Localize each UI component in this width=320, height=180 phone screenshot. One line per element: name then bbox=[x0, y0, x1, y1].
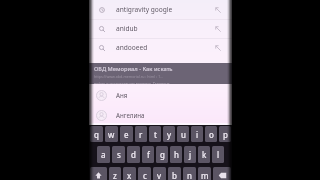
staticText: o bbox=[209, 129, 214, 140]
staticText: y bbox=[167, 129, 172, 140]
staticText: Ангелина bbox=[116, 111, 145, 119]
button[interactable]: andooeed bbox=[89, 38, 232, 57]
button[interactable]: b bbox=[168, 167, 181, 180]
button[interactable]: a bbox=[97, 146, 110, 163]
staticText: anidub bbox=[116, 24, 138, 33]
button[interactable]: k bbox=[198, 146, 210, 163]
staticText: x bbox=[127, 170, 132, 180]
staticText: войны и пострадавших военных. Странице bbox=[94, 81, 170, 84]
staticText: u bbox=[181, 129, 186, 140]
staticText: https://www.obd-memorial.ru › html › 1..… bbox=[94, 74, 164, 79]
button[interactable]: e bbox=[120, 126, 133, 142]
button[interactable]: Backspace bbox=[213, 167, 231, 180]
button[interactable]: z bbox=[109, 167, 121, 180]
staticText: n bbox=[187, 170, 192, 180]
button[interactable]: n bbox=[183, 167, 196, 180]
button[interactable]: r bbox=[135, 126, 147, 142]
button[interactable]: y bbox=[163, 126, 175, 142]
staticText: z bbox=[113, 170, 117, 180]
button[interactable]: m bbox=[198, 167, 211, 180]
other: Insert suggestion bbox=[215, 7, 221, 13]
button[interactable]: u bbox=[177, 126, 189, 142]
staticText: d bbox=[131, 149, 136, 160]
staticText: t bbox=[154, 129, 157, 140]
button[interactable]: q bbox=[90, 126, 103, 142]
button[interactable]: h bbox=[170, 146, 182, 163]
staticText: r bbox=[139, 129, 143, 140]
button[interactable]: l bbox=[212, 146, 224, 163]
button[interactable]: t bbox=[149, 126, 161, 142]
button[interactable]: w bbox=[105, 126, 118, 142]
button[interactable]: anidub bbox=[89, 19, 232, 38]
other: Insert suggestion bbox=[215, 26, 221, 32]
staticText: c bbox=[143, 170, 147, 180]
button[interactable]: s bbox=[112, 146, 125, 163]
button[interactable]: Shift bbox=[90, 167, 107, 180]
staticText: Аня bbox=[116, 91, 128, 99]
staticText: j bbox=[189, 149, 192, 160]
button[interactable]: d bbox=[127, 146, 140, 163]
button[interactable]: p bbox=[219, 126, 231, 142]
button[interactable]: x bbox=[123, 167, 136, 180]
staticText: p bbox=[223, 129, 228, 140]
button[interactable]: j bbox=[184, 146, 196, 163]
button[interactable]: i bbox=[191, 126, 203, 142]
staticText: andooeed bbox=[116, 43, 148, 52]
staticText: i bbox=[196, 129, 199, 140]
button[interactable]: f bbox=[142, 146, 154, 163]
button[interactable]: v bbox=[153, 167, 166, 180]
other: Insert suggestion bbox=[215, 45, 221, 51]
staticText: e bbox=[124, 129, 129, 140]
button[interactable]: c bbox=[138, 167, 151, 180]
staticText: w bbox=[108, 129, 115, 140]
button[interactable]: Аня bbox=[89, 85, 232, 105]
staticText: f bbox=[147, 149, 150, 160]
staticText: q bbox=[94, 129, 99, 140]
staticText: m bbox=[201, 170, 209, 180]
staticText: a bbox=[101, 149, 106, 160]
staticText: l bbox=[217, 149, 220, 160]
button[interactable]: ОБД Мемориал - Как искать bbox=[89, 63, 232, 84]
staticText: antigravity google bbox=[116, 5, 173, 14]
button[interactable]: antigravity google bbox=[89, 0, 232, 19]
staticText: v bbox=[157, 170, 162, 180]
staticText: b bbox=[172, 170, 177, 180]
staticText: g bbox=[160, 149, 165, 160]
button[interactable]: Ангелина bbox=[89, 105, 232, 125]
staticText: h bbox=[174, 149, 179, 160]
button[interactable]: o bbox=[205, 126, 217, 142]
staticText: ОБД Мемориал - Как искать bbox=[94, 65, 173, 73]
staticText: k bbox=[202, 149, 207, 160]
staticText: s bbox=[117, 149, 121, 160]
button[interactable]: g bbox=[156, 146, 168, 163]
